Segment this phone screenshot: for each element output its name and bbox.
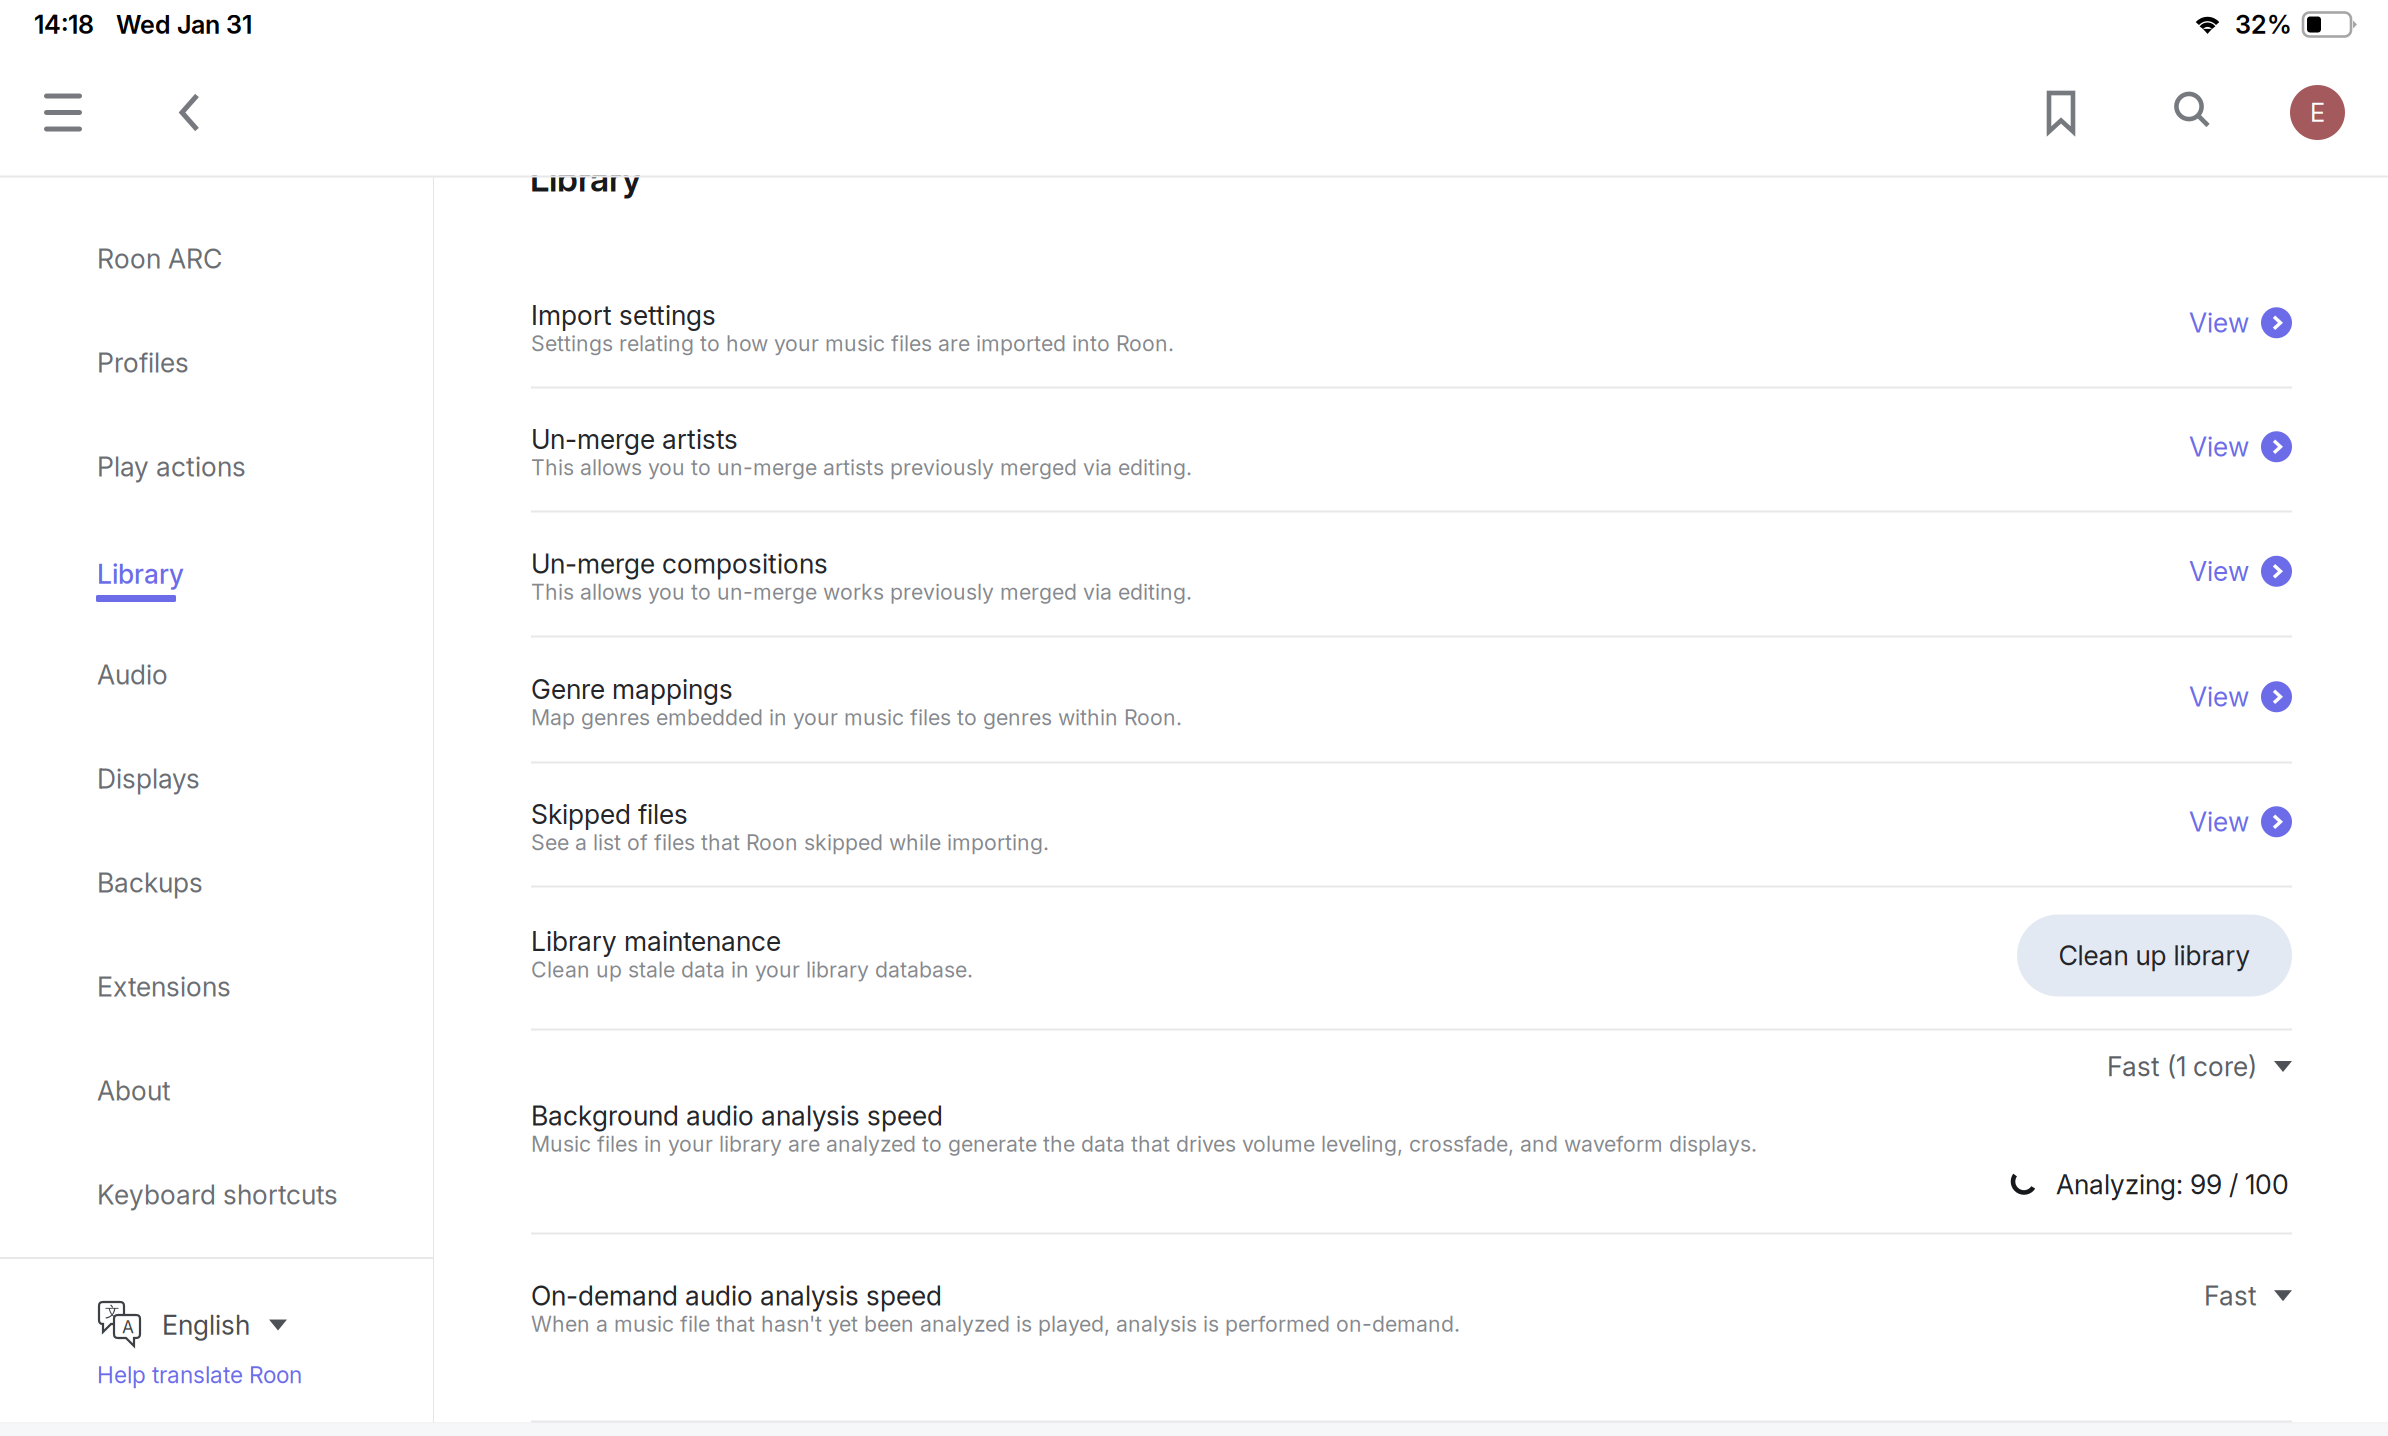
- staticText: 文: [105, 1304, 120, 1319]
- button[interactable]: View: [2169, 416, 2292, 471]
- button[interactable]: Back: [166, 81, 213, 143]
- button[interactable]: Audio: [0, 633, 433, 737]
- staticText: Fast: [2204, 1283, 2257, 1309]
- staticText: Backups: [97, 870, 203, 896]
- staticText: 14:18: [34, 12, 94, 37]
- staticText: Analyzing: 99 / 100: [2056, 1172, 2289, 1197]
- staticText: Background audio analysis speed: [531, 1103, 943, 1129]
- button[interactable]: Account: [2290, 85, 2345, 140]
- staticText: Import settings: [531, 302, 716, 328]
- staticText: Play actions: [97, 454, 246, 480]
- button[interactable]: Menu: [32, 81, 94, 143]
- button[interactable]: View: [2169, 541, 2292, 596]
- staticText: Map genres embedded in your music files …: [531, 707, 1182, 728]
- staticText: Roon ARC: [97, 246, 222, 272]
- button[interactable]: Bookmarks: [2036, 80, 2086, 144]
- staticText: Music files in your library are analyzed…: [531, 1134, 1757, 1154]
- staticText: Genre mappings: [531, 676, 733, 702]
- staticText: View: [2189, 558, 2249, 584]
- staticText: Library: [97, 558, 184, 590]
- button[interactable]: Extensions: [0, 945, 433, 1049]
- button[interactable]: Play actions: [0, 425, 433, 529]
- button[interactable]: Help translate Roon: [97, 1363, 433, 1387]
- button[interactable]: Search: [2163, 80, 2221, 144]
- staticText: Extensions: [97, 974, 231, 1000]
- button[interactable]: Fast: [2184, 1271, 2292, 1321]
- staticText: View: [2189, 809, 2249, 835]
- button[interactable]: Displays: [0, 737, 433, 841]
- button[interactable]: Backups: [0, 841, 433, 945]
- staticText: Library maintenance: [531, 928, 781, 954]
- button[interactable]: 文: [97, 1302, 433, 1348]
- button[interactable]: View: [2169, 292, 2292, 347]
- staticText: 32%: [2235, 12, 2292, 37]
- staticText: About: [97, 1078, 171, 1104]
- staticText: Help translate Roon: [97, 1364, 302, 1386]
- staticText: Settings relating to how your music file…: [531, 333, 1174, 354]
- staticText: Clean up library: [2058, 943, 2250, 968]
- button[interactable]: View: [2169, 791, 2292, 846]
- button[interactable]: Profiles: [0, 321, 433, 425]
- staticText: Clean up stale data in your library data…: [531, 959, 973, 980]
- staticText: This allows you to un-merge works previo…: [531, 582, 1192, 602]
- staticText: When a music file that hasn't yet been a…: [531, 1314, 1460, 1334]
- button[interactable]: Clean up library: [2017, 918, 2292, 1000]
- staticText: View: [2189, 684, 2249, 710]
- staticText: Audio: [97, 662, 168, 688]
- staticText: This allows you to un-merge artists prev…: [531, 457, 1192, 478]
- staticText: On-demand audio analysis speed: [531, 1283, 942, 1309]
- staticText: Displays: [97, 766, 200, 792]
- staticText: E: [2310, 100, 2325, 125]
- button[interactable]: About: [0, 1049, 433, 1153]
- staticText: Keyboard shortcuts: [97, 1182, 338, 1208]
- staticText: Profiles: [97, 350, 189, 376]
- staticText: Un-merge artists: [531, 426, 738, 452]
- button[interactable]: Fast (1 core): [2087, 1042, 2292, 1091]
- staticText: A: [122, 1318, 134, 1335]
- button[interactable]: Keyboard shortcuts: [0, 1153, 433, 1257]
- button[interactable]: Library: [0, 529, 433, 633]
- staticText: Library: [530, 162, 641, 196]
- staticText: See a list of files that Roon skipped wh…: [531, 832, 1049, 853]
- button[interactable]: Roon ARC: [0, 217, 433, 321]
- staticText: Un-merge compositions: [531, 551, 828, 577]
- staticText: View: [2189, 434, 2249, 460]
- staticText: English: [162, 1312, 250, 1338]
- button[interactable]: View: [2169, 666, 2292, 721]
- staticText: Wed Jan 31: [116, 12, 252, 37]
- staticText: Fast (1 core): [2107, 1054, 2257, 1079]
- staticText: View: [2189, 310, 2249, 336]
- staticText: Skipped files: [531, 801, 688, 827]
